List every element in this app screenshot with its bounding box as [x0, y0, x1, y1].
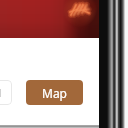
- staticText: Map: [42, 85, 67, 101]
- button[interactable]: Call: [0, 80, 12, 105]
- staticText: all: [0, 86, 2, 100]
- button[interactable]: Map: [26, 80, 83, 105]
